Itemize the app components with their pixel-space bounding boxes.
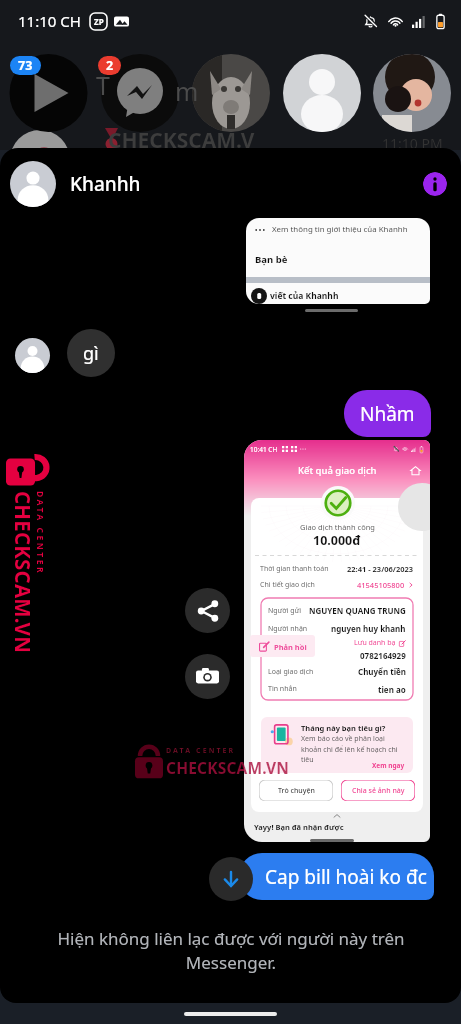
staticText: Lưu danh bạ (354, 638, 396, 648)
staticText: m (175, 74, 199, 108)
staticText: Người gửi (268, 606, 302, 616)
staticText: Trò chuyện (278, 786, 315, 796)
staticText: Giao dịch thành công (300, 522, 375, 532)
button[interactable]: Scroll to bottom (209, 857, 253, 901)
button[interactable]: Trò chuyện (259, 780, 333, 801)
staticText: Chuyển tiền (358, 666, 406, 677)
button[interactable]: Chia sẻ ảnh này (341, 780, 415, 801)
staticText: nguyen huy khanh (331, 623, 406, 634)
button[interactable]: Camera (185, 654, 230, 699)
staticText: 73 (18, 57, 33, 74)
staticText: Yayy! Bạn đã nhận được (254, 822, 344, 832)
button[interactable]: 10:41 CH (244, 440, 430, 842)
staticText: viết của Khanhh (270, 290, 339, 302)
staticText: Kết quả giao dịch (298, 464, 377, 477)
button[interactable]: Khanhh (10, 148, 447, 220)
staticText: 2 (106, 57, 114, 74)
button[interactable]: Conversation info (423, 172, 447, 196)
staticText: Cap bill hoài ko đc (265, 864, 427, 890)
staticText: Chia sẻ ảnh này (352, 786, 405, 796)
button[interactable]: Nhầm (344, 390, 431, 437)
button[interactable]: gì (67, 329, 115, 377)
staticText: CHECKSCAM.VN (166, 757, 290, 778)
staticText: 10.000đ (313, 532, 361, 549)
staticText: DATA CENTER (166, 746, 236, 756)
staticText: 41545105800 (357, 580, 405, 590)
staticText: Xem ngay (372, 761, 405, 770)
staticText: T (96, 68, 110, 102)
staticText: Loại giao dịch (268, 667, 314, 677)
staticText: Tin nhắn (268, 684, 297, 693)
button[interactable]: Xem thông tin giới thiệu của Khanhh (246, 218, 430, 304)
staticText: Phản hồi (274, 642, 307, 652)
staticText: 10:41 CH (250, 445, 278, 454)
staticText: Bạn bè (255, 253, 288, 266)
staticText: gì (83, 341, 99, 366)
staticText: Tháng này bạn tiêu gì? (301, 723, 386, 733)
staticText: DATA CENTER (34, 491, 46, 576)
staticText: Hiện không liên lạc được với người này t… (57, 927, 405, 974)
staticText: CHECKSCAM.VN (9, 491, 37, 653)
staticText: Nhầm (360, 401, 415, 427)
staticText: CHECKSCAM.V (108, 126, 255, 155)
staticText: 22:41 - 23/06/2023 (347, 564, 414, 574)
staticText: 0782164929 (360, 650, 406, 661)
staticText: tien ao (378, 684, 406, 693)
staticText: 11:10 CH (18, 11, 81, 31)
staticText: Khanhh (70, 171, 141, 197)
button[interactable]: Cap bill hoài ko đc (239, 853, 434, 900)
staticText: ZP (94, 16, 104, 27)
staticText: NGUYEN QUANG TRUNG (309, 605, 406, 616)
staticText: Xem thông tin giới thiệu của Khanhh (272, 224, 408, 235)
button[interactable]: Share (185, 588, 230, 633)
staticText: Chi tiết giao dịch (260, 580, 315, 590)
staticText: Xem báo cáo về phân loại khoản chi để lê… (301, 734, 404, 764)
staticText: Thời gian thanh toán (260, 564, 329, 574)
staticText: Người nhận (268, 624, 308, 634)
staticText: 11:10 PM (382, 134, 443, 153)
